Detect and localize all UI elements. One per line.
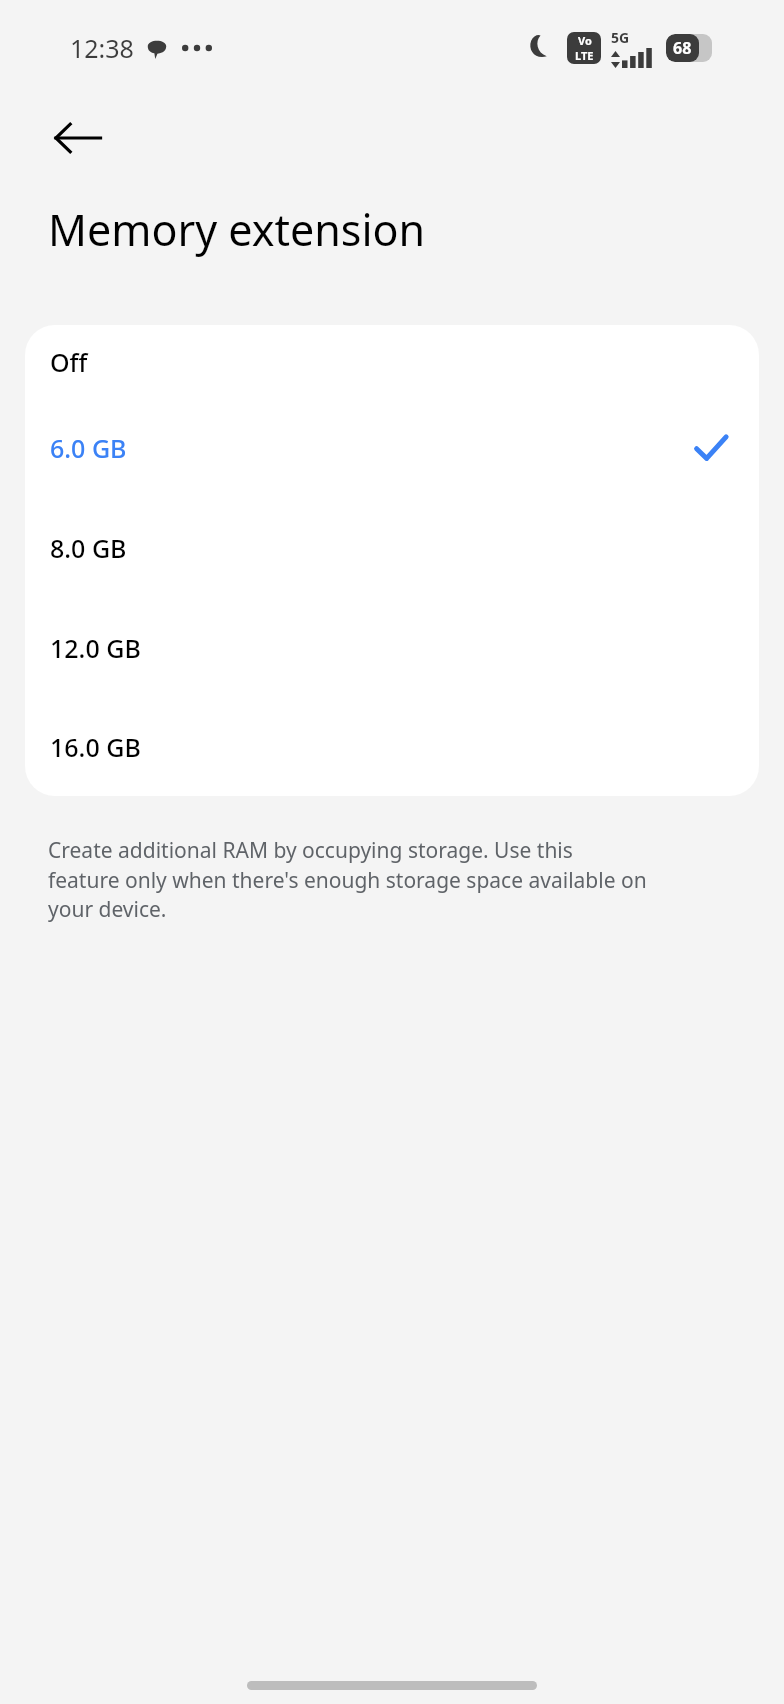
staticText: Create additional RAM by occupying stora… [48,836,648,923]
button[interactable]: Back [44,104,112,172]
staticText: Memory extension [48,200,426,259]
staticText: 68 [673,37,692,59]
staticText: 12.0 GB [50,631,141,665]
button[interactable]: 16.0 GB [25,698,759,796]
button[interactable]: 6.0 GB [25,398,759,498]
staticText: Vo [578,33,592,48]
staticText: Off [50,345,88,379]
button[interactable]: 8.0 GB [25,498,759,598]
staticText: 16.0 GB [50,730,141,764]
staticText: 6.0 GB [50,431,127,465]
button[interactable]: Off [25,325,759,398]
staticText: 8.0 GB [50,531,127,565]
button[interactable]: 12.0 GB [25,598,759,698]
staticText: LTE [575,48,594,63]
staticText: 12:38 [70,31,134,65]
staticText: 5G [611,28,630,47]
